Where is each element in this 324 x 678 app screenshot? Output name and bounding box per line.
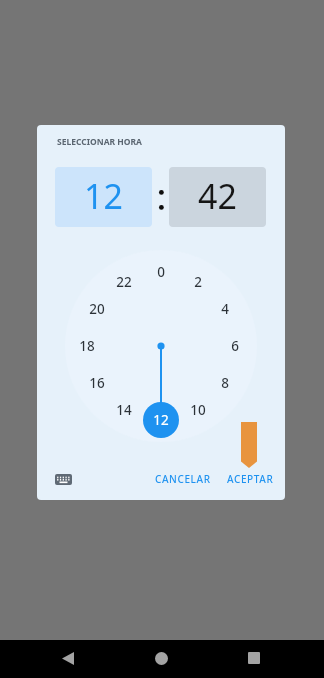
button[interactable]: 8 xyxy=(210,372,240,394)
staticText: ACEPTAR xyxy=(227,472,274,486)
button[interactable]: Inicio xyxy=(143,640,179,676)
button[interactable]: 22 xyxy=(109,271,139,293)
staticText: 22 xyxy=(116,273,132,291)
button[interactable]: 18 xyxy=(72,335,102,357)
staticText: 12 xyxy=(153,411,169,429)
staticText: 8 xyxy=(221,374,229,392)
staticText: SELECCIONAR HORA xyxy=(57,136,142,148)
staticText: 12 xyxy=(84,173,123,219)
staticText: CANCELAR xyxy=(155,472,211,486)
button[interactable]: CANCELAR xyxy=(147,465,219,493)
button[interactable]: Atrás xyxy=(50,640,86,676)
button[interactable]: 10 xyxy=(183,399,213,421)
staticText: 0 xyxy=(157,263,165,281)
button[interactable]: 2 xyxy=(183,271,213,293)
staticText: 2 xyxy=(194,273,202,291)
button[interactable]: 6 xyxy=(220,335,250,357)
button[interactable]: Aplicaciones recientes xyxy=(236,640,272,676)
staticText: 20 xyxy=(89,300,105,318)
staticText: 6 xyxy=(231,337,239,355)
button[interactable]: ACEPTAR xyxy=(219,465,282,493)
button[interactable]: Cambiar al modo de entrada de texto xyxy=(46,462,80,496)
staticText: 14 xyxy=(116,401,132,419)
staticText: 10 xyxy=(190,401,206,419)
staticText: 4 xyxy=(221,300,229,318)
button[interactable]: 42 xyxy=(169,167,266,227)
button[interactable]: 14 xyxy=(109,399,139,421)
staticText: 18 xyxy=(79,337,95,355)
button[interactable]: 0 xyxy=(146,261,176,283)
staticText: 42 xyxy=(198,173,237,219)
button[interactable]: 16 xyxy=(82,372,112,394)
button[interactable]: 4 xyxy=(210,298,240,320)
staticText: 16 xyxy=(89,374,105,392)
button[interactable]: 12 xyxy=(146,409,176,431)
button[interactable]: 12 xyxy=(55,167,152,227)
button[interactable]: 20 xyxy=(82,298,112,320)
